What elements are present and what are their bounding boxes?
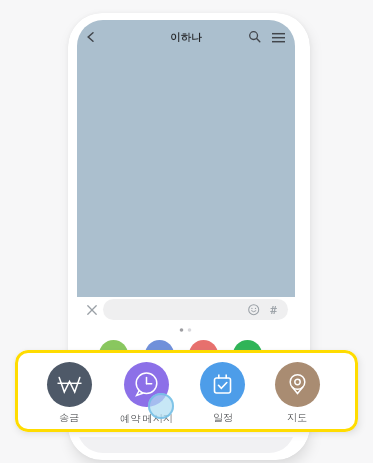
staticText: 이하나 [170,31,202,44]
staticText: # [270,302,278,317]
staticText: 지도 [287,411,307,424]
staticText: 일정 [213,411,233,424]
staticText: 송금 [59,411,79,424]
staticText: 예약 메시지 [120,411,173,425]
